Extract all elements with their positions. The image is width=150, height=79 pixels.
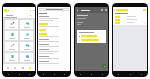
- button[interactable]: Add: [102, 64, 106, 68]
- button[interactable]: [20, 42, 33, 51]
- button[interactable]: [38, 48, 70, 55]
- button[interactable]: Favourites: [20, 65, 26, 71]
- button[interactable]: [5, 53, 18, 62]
- button[interactable]: Profile: [27, 65, 33, 71]
- button[interactable]: [113, 21, 147, 24]
- button[interactable]: [79, 39, 104, 41]
- button[interactable]: [38, 55, 70, 60]
- button[interactable]: [38, 28, 70, 32]
- button[interactable]: [20, 31, 33, 40]
- button[interactable]: [113, 18, 147, 21]
- button[interactable]: Home: [5, 65, 11, 71]
- button[interactable]: Search: [39, 8, 69, 11]
- button[interactable]: [38, 43, 70, 48]
- button[interactable]: Logo: [4, 9, 7, 12]
- button[interactable]: [5, 31, 18, 40]
- button[interactable]: [38, 32, 70, 38]
- button[interactable]: [38, 60, 70, 65]
- button[interactable]: [5, 42, 18, 51]
- button[interactable]: [38, 15, 70, 22]
- button[interactable]: Search: [12, 65, 18, 71]
- button[interactable]: [20, 53, 33, 62]
- button[interactable]: [5, 20, 18, 29]
- button[interactable]: [38, 22, 70, 28]
- button[interactable]: [113, 15, 147, 18]
- button[interactable]: [79, 35, 104, 37]
- button[interactable]: [20, 20, 33, 29]
- button[interactable]: [38, 38, 70, 43]
- button[interactable]: Back: [76, 9, 79, 12]
